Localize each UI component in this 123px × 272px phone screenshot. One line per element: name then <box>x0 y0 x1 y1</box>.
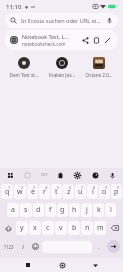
staticText: r <box>43 187 46 197</box>
button[interactable]: Edit <box>102 35 113 46</box>
staticText: t <box>55 187 58 197</box>
button[interactable]: j <box>81 203 92 217</box>
staticText: 2 <box>21 185 24 190</box>
button[interactable]: s <box>20 203 32 217</box>
staticText: q <box>5 187 10 197</box>
staticText: u <box>78 187 83 197</box>
staticText: 7 <box>81 185 84 190</box>
button[interactable]: Enter <box>105 237 122 256</box>
button[interactable]: ?123 <box>1 237 17 256</box>
button[interactable]: z <box>63 184 74 199</box>
staticText: 1 <box>8 185 11 190</box>
button[interactable]: Shift <box>1 219 15 237</box>
staticText: b <box>72 223 77 233</box>
button[interactable]: Home <box>56 259 68 271</box>
staticText: o <box>102 187 107 197</box>
button[interactable]: h <box>69 203 80 217</box>
button[interactable]: . <box>93 237 104 256</box>
staticText: c <box>46 223 50 233</box>
button[interactable]: Octane 2.0… <box>81 54 117 81</box>
staticText: 8 <box>93 185 96 190</box>
button[interactable]: v <box>55 221 67 235</box>
staticText: Octane 2.0… <box>81 72 117 78</box>
button[interactable]: Emoji <box>30 237 41 256</box>
staticText: j <box>86 205 88 215</box>
staticText: Kraken Jav… <box>44 72 80 78</box>
button[interactable]: Theme <box>90 170 101 181</box>
staticText: v <box>59 223 63 233</box>
staticText: i <box>92 187 94 197</box>
button[interactable]: l <box>105 203 116 217</box>
button[interactable]: Share <box>80 35 91 46</box>
button[interactable]: y <box>16 221 28 235</box>
button[interactable]: b <box>68 221 80 235</box>
button[interactable]: Search <box>5 13 118 28</box>
staticText: p <box>114 187 119 197</box>
button[interactable]: Copy link <box>91 35 102 46</box>
button[interactable]: Settings <box>72 170 83 181</box>
staticText: 5 <box>57 185 60 190</box>
staticText: Notebook Test, L… <box>22 33 69 40</box>
staticText: k <box>97 205 101 215</box>
button[interactable]: GIF <box>40 171 49 179</box>
staticText: GIF <box>41 172 48 178</box>
button[interactable]: o <box>99 184 110 199</box>
staticText: z <box>67 187 71 197</box>
button[interactable]: Apps <box>5 170 16 181</box>
button[interactable]: q <box>1 184 13 199</box>
button[interactable]: / <box>18 237 29 256</box>
button[interactable]: r <box>39 184 50 199</box>
button[interactable]: p <box>111 184 122 199</box>
button[interactable]: Back <box>89 259 101 271</box>
button[interactable]: e <box>27 184 38 199</box>
button[interactable]: d <box>33 203 44 217</box>
button[interactable]: m <box>94 221 106 235</box>
staticText: y <box>20 223 24 233</box>
button[interactable]: w <box>14 184 26 199</box>
staticText: 6 <box>69 185 72 190</box>
button[interactable]: t <box>51 184 62 199</box>
button[interactable]: c <box>42 221 54 235</box>
staticText: 11:10 <box>6 3 22 11</box>
staticText: 9 <box>105 185 108 190</box>
button[interactable]: i <box>87 184 98 199</box>
staticText: g <box>60 205 65 215</box>
button[interactable]: Kraken Jav… <box>44 54 80 81</box>
staticText: ?123 <box>4 244 14 250</box>
staticText: In Ecosia suchen oder URL eing <box>21 17 103 25</box>
button[interactable]: g <box>57 203 68 217</box>
button[interactable]: Backspace <box>107 219 122 237</box>
button[interactable]: n <box>81 221 93 235</box>
staticText: e <box>31 187 35 197</box>
staticText: / <box>22 243 25 251</box>
button[interactable]: Stickers <box>22 170 33 181</box>
other: Voice search <box>106 17 113 24</box>
staticText: m <box>97 223 104 233</box>
button[interactable]: x <box>29 221 41 235</box>
staticText: . <box>98 243 100 251</box>
staticText: a <box>11 205 15 215</box>
button[interactable]: Clipboard <box>55 170 66 181</box>
staticText: 3 <box>33 185 36 190</box>
staticText: n <box>85 223 90 233</box>
staticText: 0 <box>117 185 120 190</box>
button[interactable]: k <box>93 203 104 217</box>
staticText: s <box>24 205 28 215</box>
button[interactable]: Recents <box>22 259 34 271</box>
button[interactable]: u <box>75 184 86 199</box>
staticText: notebookcheck.com <box>22 41 66 47</box>
button[interactable]: Dem Test st… <box>6 54 42 81</box>
button[interactable]: Voice input <box>107 170 118 181</box>
staticText: d <box>36 205 41 215</box>
staticText: Dem Test st… <box>6 72 42 78</box>
staticText: w <box>17 187 23 197</box>
other: Search <box>10 17 17 24</box>
staticText: f <box>49 205 52 215</box>
button[interactable]: Notebook Test, L… <box>5 30 118 50</box>
button[interactable]: f <box>45 203 56 217</box>
staticText: l <box>110 205 112 215</box>
button[interactable]: a <box>7 203 19 217</box>
staticText: 4 <box>45 185 48 190</box>
staticText: h <box>72 205 77 215</box>
